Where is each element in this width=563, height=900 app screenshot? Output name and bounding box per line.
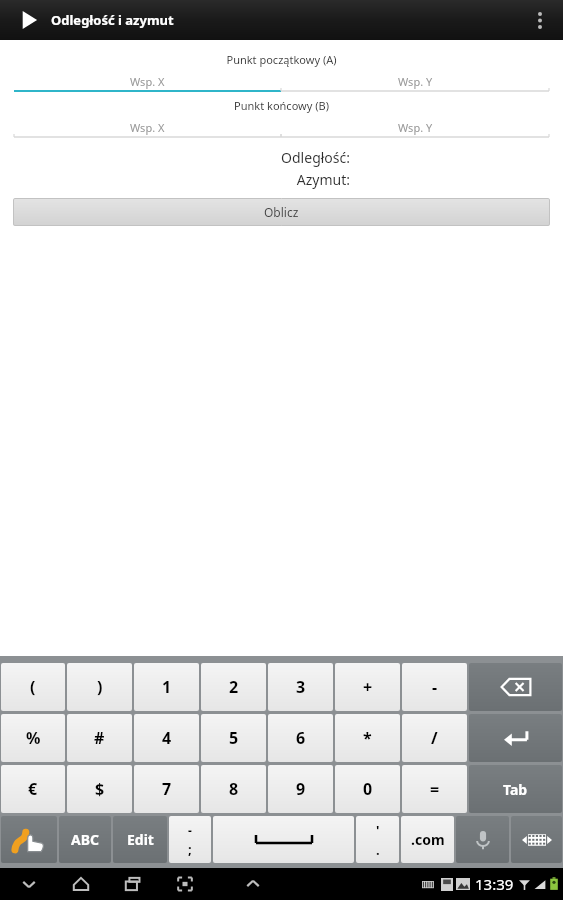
button[interactable]: Expand xyxy=(238,868,268,900)
staticText: Wsp. Y xyxy=(398,120,433,135)
button[interactable]: 3 xyxy=(268,663,333,711)
button[interactable]: Backspace xyxy=(469,663,562,711)
staticText: Odległość: xyxy=(0,148,350,167)
button[interactable]: App icon xyxy=(14,5,44,35)
staticText: / xyxy=(431,727,438,749)
staticText: .com xyxy=(411,830,445,849)
button[interactable]: Hide keyboard xyxy=(14,868,44,900)
staticText: 6 xyxy=(296,727,306,749)
button[interactable]: ABC xyxy=(59,816,111,863)
staticText: € xyxy=(28,778,38,800)
staticText: + xyxy=(363,676,373,698)
staticText: Oblicz xyxy=(264,204,299,220)
staticText: 7 xyxy=(162,778,172,800)
staticText: ABC xyxy=(71,830,99,849)
button[interactable]: ) xyxy=(67,663,132,711)
button[interactable]: More options xyxy=(527,0,553,40)
button[interactable]: Wsp. Y xyxy=(281,119,549,139)
staticText: Punkt końcowy (B) xyxy=(0,98,563,113)
staticText: 8 xyxy=(229,778,239,800)
staticText: - xyxy=(432,676,438,698)
button[interactable]: 4 xyxy=(134,714,199,762)
button[interactable]: 5 xyxy=(201,714,266,762)
button[interactable]: 9 xyxy=(268,765,333,813)
staticText: ' xyxy=(376,821,380,839)
staticText: * xyxy=(363,727,372,749)
button[interactable]: * xyxy=(335,714,400,762)
staticText: 5 xyxy=(229,727,239,749)
button[interactable]: Colon xyxy=(356,816,399,863)
staticText: 2 xyxy=(229,676,239,698)
button[interactable]: # xyxy=(67,714,132,762)
staticText: Azymut: xyxy=(0,170,350,189)
button[interactable]: % xyxy=(1,714,65,762)
staticText: = xyxy=(430,778,440,800)
button[interactable]: 7 xyxy=(134,765,199,813)
staticText: Punkt początkowy (A) xyxy=(0,52,563,67)
button[interactable]: / xyxy=(402,714,467,762)
button[interactable]: Recent apps xyxy=(118,868,148,900)
staticText: 1 xyxy=(162,676,172,698)
staticText: ; xyxy=(188,840,192,858)
button[interactable]: Screenshot xyxy=(170,868,200,900)
button[interactable]: Oblicz xyxy=(13,198,550,226)
staticText: % xyxy=(26,727,41,749)
button[interactable]: 2 xyxy=(201,663,266,711)
button[interactable]: 8 xyxy=(201,765,266,813)
staticText: 3 xyxy=(296,676,306,698)
button[interactable] xyxy=(213,816,354,863)
staticText: 4 xyxy=(162,727,172,749)
staticText: ) xyxy=(97,676,103,698)
staticText: Wsp. X xyxy=(130,74,165,89)
staticText: Edit xyxy=(127,830,154,849)
staticText: Wsp. X xyxy=(130,120,165,135)
button[interactable]: + xyxy=(335,663,400,711)
staticText: # xyxy=(94,727,105,749)
button[interactable]: Home xyxy=(66,868,96,900)
staticText: 9 xyxy=(296,778,306,800)
button[interactable]: Switch keyboard xyxy=(511,816,562,863)
button[interactable]: Edit xyxy=(113,816,167,863)
button[interactable]: 0 xyxy=(335,765,400,813)
staticText: 0 xyxy=(363,778,373,800)
button[interactable]: Wsp. Y xyxy=(281,73,549,93)
button[interactable]: Swipe input xyxy=(1,816,57,863)
button[interactable]: $ xyxy=(67,765,132,813)
button[interactable]: € xyxy=(1,765,65,813)
button[interactable]: Voice input xyxy=(456,816,509,863)
staticText: ( xyxy=(30,676,36,698)
button[interactable]: 1 xyxy=(134,663,199,711)
button[interactable]: Wsp. X xyxy=(14,73,281,93)
staticText: Tab xyxy=(503,780,528,799)
button[interactable]: - xyxy=(402,663,467,711)
button[interactable]: Enter xyxy=(469,714,562,762)
staticText: 13:39 xyxy=(475,874,514,894)
staticText: Wsp. Y xyxy=(398,74,433,89)
staticText: Odległość i azymut xyxy=(51,11,174,29)
button[interactable]: Semicolon xyxy=(169,816,211,863)
staticText: . xyxy=(376,841,380,859)
button[interactable]: = xyxy=(402,765,467,813)
staticText: $ xyxy=(95,778,105,800)
button[interactable]: Wsp. X xyxy=(14,119,281,139)
button[interactable]: ( xyxy=(1,663,65,711)
button[interactable]: 6 xyxy=(268,714,333,762)
button[interactable]: Tab xyxy=(469,765,562,813)
button[interactable]: .com xyxy=(401,816,454,863)
staticText: - xyxy=(188,822,192,838)
